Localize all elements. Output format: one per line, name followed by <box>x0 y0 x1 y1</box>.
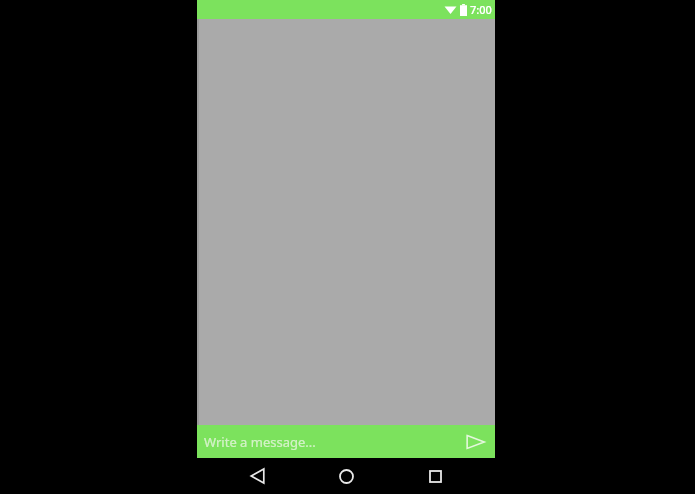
staticText: 7:00 <box>470 2 492 17</box>
button[interactable]: Send <box>455 425 495 458</box>
button[interactable]: Home <box>317 458 375 494</box>
button[interactable]: Recent apps <box>406 458 464 494</box>
button[interactable]: Back <box>228 458 286 494</box>
button[interactable]: Write a message... <box>197 425 455 458</box>
staticText: Write a message... <box>204 433 316 451</box>
